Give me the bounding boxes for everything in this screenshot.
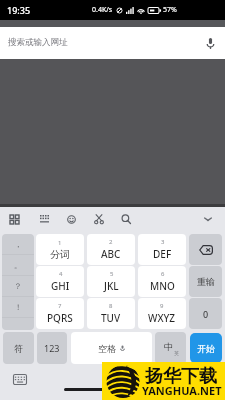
staticText: 中 [164, 341, 173, 352]
button[interactable]: Hide keyboard [199, 210, 217, 228]
button[interactable]: 3 [138, 234, 186, 265]
staticText: 3 [161, 238, 165, 246]
staticText: 123 [44, 342, 60, 354]
staticText: 符 [14, 343, 23, 354]
staticText: 9 [160, 302, 164, 310]
button[interactable]: 8 [87, 298, 135, 329]
button[interactable]: Emoji [62, 210, 80, 228]
staticText: ABC [101, 247, 121, 261]
staticText: 2 [109, 238, 113, 246]
button[interactable]: 符 [3, 332, 34, 364]
staticText: 8 [109, 302, 113, 310]
button[interactable]: 重输 [189, 266, 222, 297]
button[interactable]: ， [2, 234, 34, 254]
button[interactable]: Keyboard layout [35, 210, 53, 228]
staticText: 19:35 [7, 4, 31, 16]
staticText: 0 [203, 308, 209, 320]
staticText: WXYZ [148, 311, 176, 325]
staticText: ！ [14, 302, 22, 312]
button[interactable]: ！ [2, 297, 34, 317]
staticText: PQRS [47, 311, 73, 325]
staticText: GHI [51, 279, 70, 293]
staticText: ， [14, 239, 22, 249]
button[interactable]: 5 [87, 266, 135, 297]
staticText: TUV [101, 311, 121, 325]
staticText: 5 [110, 270, 114, 278]
staticText: 。 [14, 260, 22, 270]
staticText: 扬华下载 [145, 365, 217, 388]
button[interactable]: ？ [2, 276, 34, 296]
button[interactable]: 6 [138, 266, 186, 297]
button[interactable]: 9 [138, 298, 186, 329]
staticText: 重输 [197, 276, 215, 287]
staticText: 搜索或输入网址 [8, 37, 68, 48]
staticText: 1 [58, 239, 62, 247]
button[interactable]: 1 [36, 234, 84, 265]
staticText: DEF [153, 247, 172, 261]
staticText: 57% [163, 5, 177, 15]
button[interactable]: Backspace [189, 234, 222, 265]
staticText: ？ [14, 281, 22, 291]
button[interactable]: 空格 [71, 332, 152, 364]
button[interactable]: 2 [87, 234, 135, 265]
staticText: YANGHUA.NET [142, 383, 222, 398]
staticText: MNO [150, 279, 175, 293]
staticText: 开始 [197, 343, 215, 354]
button[interactable]: 7 [36, 298, 84, 329]
staticText: 英 [174, 350, 179, 356]
staticText: 6 [161, 270, 165, 278]
button[interactable]: Panels [5, 210, 23, 228]
staticText: 分词 [50, 248, 70, 261]
button[interactable]: 开始 [190, 333, 222, 363]
button[interactable]: Voice search [197, 30, 223, 56]
button[interactable]: Search [117, 210, 135, 228]
button[interactable]: Clipboard [90, 210, 108, 228]
button[interactable]: 4 [36, 266, 84, 297]
button[interactable]: 123 [37, 332, 67, 364]
staticText: 空格 [98, 343, 116, 354]
button[interactable]: 0 [189, 298, 222, 329]
staticText: JKL [104, 279, 119, 293]
staticText: 4 [59, 270, 63, 278]
staticText: 7 [58, 302, 62, 310]
button[interactable]: Switch keyboard [10, 369, 30, 389]
button[interactable]: 中英切换 [155, 332, 186, 364]
staticText: 0.4K/s [92, 5, 113, 15]
